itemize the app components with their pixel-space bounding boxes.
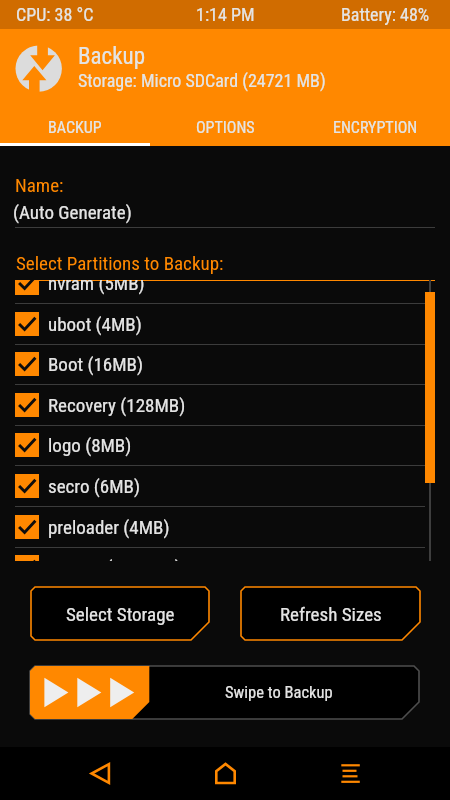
button[interactable]: logo (8MB) — [0, 425, 450, 466]
button[interactable]: OPTIONS — [150, 107, 300, 146]
staticText: preloader (4MB) — [48, 516, 170, 538]
staticText: uboot (4MB) — [48, 313, 142, 335]
staticText: Battery: 48% — [341, 4, 430, 25]
staticText: Storage: Micro SDCard (24721 MB) — [78, 70, 326, 91]
staticText: BACKUP — [48, 118, 102, 137]
button[interactable]: Boot (16MB) — [0, 344, 450, 385]
button[interactable]: nvram (5MB) — [0, 280, 450, 304]
button[interactable]: Back — [73, 747, 127, 800]
staticText: Boot (16MB) — [48, 353, 143, 375]
staticText: ENCRYPTION — [333, 118, 418, 137]
button[interactable]: Swipe to Backup — [30, 666, 419, 719]
staticText: Select Storage — [66, 603, 175, 625]
button[interactable]: Refresh Sizes — [241, 587, 420, 640]
button[interactable]: Recent apps — [323, 747, 377, 800]
staticText: logo (8MB) — [48, 434, 132, 456]
staticText: Select Partitions to Backup: — [16, 252, 224, 274]
staticText: CPU: 38 °C — [16, 4, 94, 25]
staticText: OPTIONS — [196, 118, 255, 137]
staticText: system (1024MB) — [48, 556, 181, 561]
staticText: Name: — [15, 174, 64, 196]
staticText: 1:14 PM — [196, 4, 255, 25]
button[interactable]: system (1024MB) — [0, 547, 450, 561]
button[interactable]: Recovery (128MB) — [0, 385, 450, 426]
staticText: Recovery (128MB) — [48, 394, 186, 416]
button[interactable]: preloader (4MB) — [0, 507, 450, 548]
staticText: Refresh Sizes — [280, 603, 382, 625]
staticText: (Auto Generate) — [13, 201, 132, 223]
staticText: secro (6MB) — [48, 475, 140, 497]
button[interactable]: ENCRYPTION — [300, 107, 450, 146]
button[interactable]: Select Storage — [31, 587, 209, 640]
button[interactable]: BACKUP — [0, 107, 150, 146]
staticText: nvram (5MB) — [48, 280, 145, 294]
button[interactable]: uboot (4MB) — [0, 304, 450, 345]
button[interactable]: secro (6MB) — [0, 466, 450, 507]
staticText: Backup — [78, 43, 146, 70]
button[interactable]: Home — [198, 747, 252, 800]
staticText: Swipe to Backup — [225, 683, 333, 702]
